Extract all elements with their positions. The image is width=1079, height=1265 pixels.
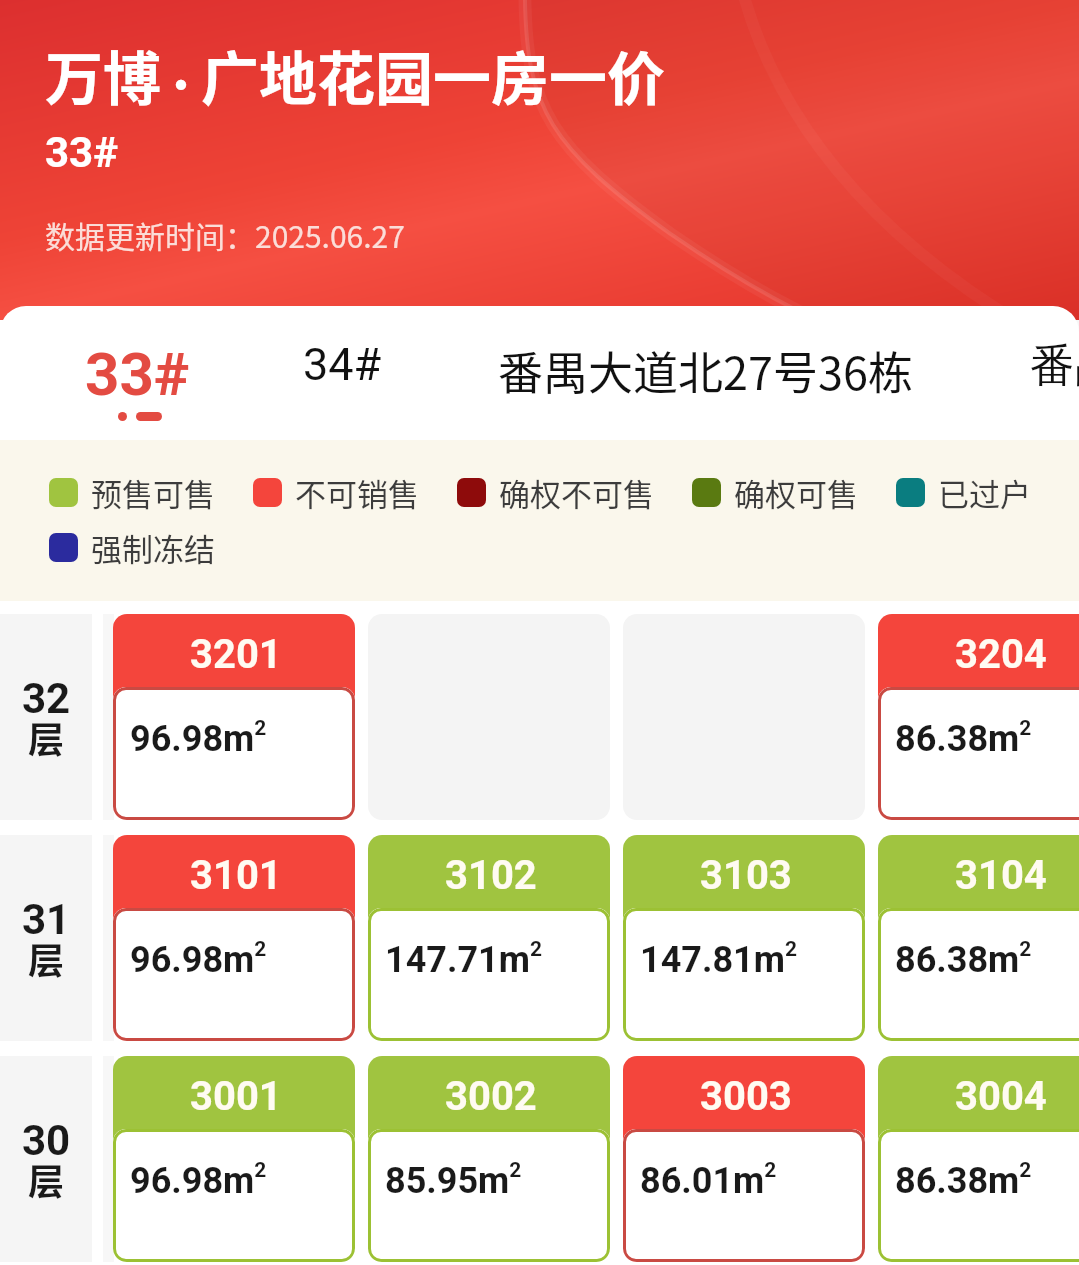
staticText: 33#	[85, 339, 190, 409]
button[interactable]: 确权不可售	[457, 470, 654, 515]
staticText: 3003	[700, 1073, 792, 1120]
staticText: 147.71m2	[385, 937, 539, 981]
button[interactable]: 番禺大道	[910, 306, 1079, 440]
button[interactable]: 预售可售	[49, 470, 215, 515]
button[interactable]: 3101	[113, 835, 355, 1041]
button[interactable]: 3003	[623, 1056, 865, 1262]
staticText: 86.01m2	[640, 1158, 774, 1202]
staticText: 番禺大道北27号36栋	[498, 338, 913, 403]
staticText: 番禺大道	[1030, 338, 1079, 395]
staticText: 85.95m2	[385, 1158, 519, 1202]
staticText: 3101	[190, 852, 282, 899]
button[interactable]: 已过户	[896, 470, 1031, 515]
staticText: 147.81m2	[640, 937, 794, 981]
button[interactable]: 确权可售	[692, 470, 858, 515]
staticText: 数据更新时间：2025.06.27	[45, 213, 405, 256]
staticText: 已过户	[938, 470, 1031, 515]
staticText: 32	[22, 674, 71, 723]
staticText: 30	[22, 1116, 71, 1165]
button[interactable]: 34#	[188, 306, 382, 440]
staticText: 层	[28, 932, 65, 984]
staticText: 3001	[190, 1073, 282, 1120]
staticText: 96.98m2	[130, 937, 264, 981]
button[interactable]: 3001	[113, 1056, 355, 1262]
staticText: 86.38m2	[895, 1158, 1029, 1202]
button[interactable]: 不可销售	[253, 470, 419, 515]
staticText: 3002	[445, 1073, 537, 1120]
staticText: 33#	[45, 128, 119, 177]
button[interactable]: 3204	[878, 614, 1079, 820]
staticText: 预售可售	[91, 470, 215, 515]
button[interactable]: 3004	[878, 1056, 1079, 1262]
staticText: 3102	[445, 852, 537, 899]
staticText: 86.38m2	[895, 716, 1029, 760]
button[interactable]: 强制冻结	[49, 525, 215, 570]
button[interactable]: 3103	[623, 835, 865, 1041]
button[interactable]: 3201	[113, 614, 355, 820]
staticText: 96.98m2	[130, 716, 264, 760]
staticText: 96.98m2	[130, 1158, 264, 1202]
button[interactable]: 3002	[368, 1056, 610, 1262]
staticText: 确权不可售	[499, 470, 654, 515]
button[interactable]: 3104	[878, 835, 1079, 1041]
button[interactable]: 3102	[368, 835, 610, 1041]
button[interactable]: 33#	[0, 306, 188, 440]
staticText: 强制冻结	[91, 525, 215, 570]
staticText: 层	[28, 1153, 65, 1205]
staticText: 3004	[955, 1073, 1047, 1120]
staticText: 3204	[955, 631, 1047, 678]
staticText: 不可销售	[295, 470, 419, 515]
staticText: 层	[28, 711, 65, 763]
staticText: 确权可售	[734, 470, 858, 515]
staticText: 34#	[303, 338, 382, 391]
staticText: 3201	[190, 631, 282, 678]
staticText: 3104	[955, 852, 1047, 899]
staticText: 86.38m2	[895, 937, 1029, 981]
staticText: 万博·广地花园一房一价	[45, 33, 666, 117]
staticText: 3103	[700, 852, 792, 899]
button[interactable]: 番禺大道北27号36栋	[382, 306, 910, 440]
staticText: 31	[22, 895, 71, 944]
